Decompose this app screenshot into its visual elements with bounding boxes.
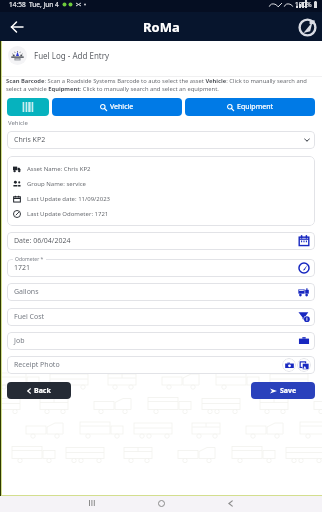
staticText: Odometer * [15, 256, 44, 263]
staticText: Job [14, 336, 25, 346]
button[interactable]: Date: 06/04/2024 [7, 232, 315, 250]
staticText: Vehicle [8, 119, 28, 127]
staticText: Fuel Cost [14, 312, 45, 322]
button[interactable]: Save [251, 382, 315, 399]
staticText: Group Name: service [27, 180, 86, 188]
staticText: RoMa [143, 18, 180, 36]
staticText: Fuel Log - Add Entry [34, 50, 110, 61]
button[interactable]: Fuel Cost [7, 308, 315, 326]
button[interactable]: Account [297, 17, 317, 37]
button[interactable]: Equipment [185, 98, 315, 116]
staticText: Asset Name: Chris KP2 [27, 165, 91, 173]
button[interactable]: Chris KP2 [7, 131, 315, 149]
staticText: Gallons [14, 287, 39, 297]
button[interactable]: Take photo [282, 358, 296, 372]
button[interactable]: Vehicle [52, 98, 182, 116]
button[interactable]: 1721 [7, 259, 315, 277]
button[interactable]: Back [7, 382, 71, 399]
staticText: Back [34, 386, 51, 396]
button[interactable]: Job [7, 332, 315, 350]
staticText: Save [280, 386, 297, 396]
button[interactable]: Back [222, 495, 238, 511]
button[interactable]: Back [6, 16, 28, 38]
staticText: Date: 06/04/2024 [14, 236, 71, 246]
staticText: 100% [295, 0, 312, 9]
button[interactable]: Recents [84, 495, 100, 511]
staticText: Vehicle [110, 102, 134, 112]
button[interactable]: Home [153, 495, 169, 511]
staticText: Receipt Photo [14, 360, 60, 370]
staticText: 1721 [14, 263, 31, 273]
button[interactable]: Choose from gallery [297, 358, 311, 372]
staticText: Chris KP2 [14, 135, 46, 145]
staticText: Equipment [237, 102, 273, 112]
staticText: 14:58 Tue, Jun 4 [9, 0, 59, 9]
staticText: Last Update date: 11/09/2023 [27, 195, 111, 203]
button[interactable]: Scan Barcode [7, 98, 49, 116]
staticText: Last Update Odometer: 1721 [27, 210, 109, 218]
button[interactable]: Gallons [7, 283, 315, 301]
staticText: Scan Barcode: Scan a Roadside Systems Ba… [6, 77, 316, 93]
